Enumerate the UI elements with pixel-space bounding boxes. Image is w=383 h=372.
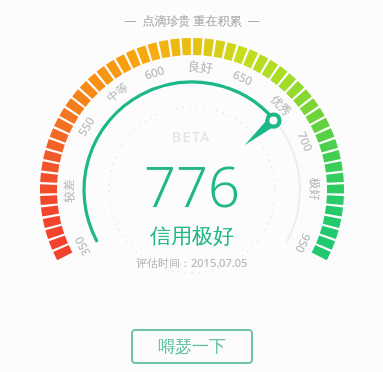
staticText: BETA — [172, 127, 211, 146]
staticText: 信用极好 — [150, 223, 234, 249]
staticText: 嘚瑟一下 — [158, 336, 226, 357]
button[interactable]: 嘚瑟一下 — [131, 329, 253, 364]
staticText: 评估时间：2015.07.05 — [136, 255, 248, 270]
staticText: — 点滴珍贵 重在积累 — — [124, 12, 260, 28]
staticText: 776 — [144, 147, 240, 223]
